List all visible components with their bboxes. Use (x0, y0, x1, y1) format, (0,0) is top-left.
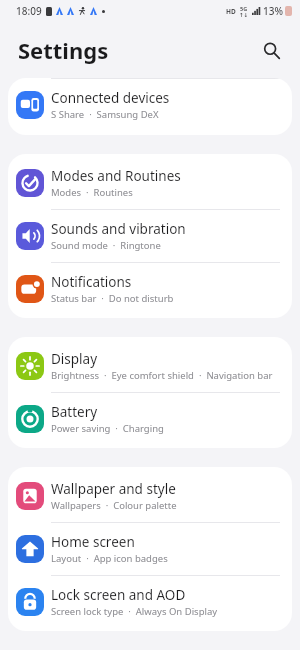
staticText: Sounds and vibration (51, 220, 186, 238)
staticText: Power saving · Charging (51, 422, 164, 435)
staticText: Wallpapers · Colour palette (51, 499, 177, 512)
staticText: 13% (263, 4, 283, 18)
button[interactable]: Battery (8, 393, 292, 445)
staticText: Layout · App icon badges (51, 552, 168, 565)
button[interactable]: Search (254, 33, 288, 67)
staticText: Modes and Routines (51, 167, 181, 185)
staticText: Status bar · Do not disturb (51, 292, 174, 305)
button[interactable]: Sounds and vibration (8, 210, 292, 263)
button[interactable]: Wallpaper and style (8, 470, 292, 523)
staticText: Modes · Routines (51, 186, 133, 199)
button[interactable]: Display (8, 340, 292, 393)
button[interactable]: Connected devices (8, 79, 292, 131)
button[interactable]: Modes and Routines (8, 157, 292, 210)
button[interactable]: Notifications (8, 263, 292, 315)
staticText: 18:09 (16, 4, 42, 18)
staticText: Settings (18, 35, 109, 65)
staticText: Brightness · Eye comfort shield · Naviga… (51, 369, 273, 382)
staticText: Home screen (51, 533, 135, 551)
staticText: Sound mode · Ringtone (51, 239, 161, 252)
staticText: Display (51, 350, 98, 368)
staticText: Wallpaper and style (51, 480, 176, 498)
staticText: Battery (51, 403, 98, 421)
button[interactable]: Lock screen and AOD (8, 576, 292, 628)
staticText: 5G (240, 5, 248, 12)
staticText: S Share · Samsung DeX (51, 108, 159, 121)
staticText: Notifications (51, 273, 132, 291)
staticText: Lock screen and AOD (51, 586, 186, 604)
staticText: Connected devices (51, 89, 170, 107)
staticText: ↑↓ (239, 12, 249, 18)
button[interactable]: Home screen (8, 523, 292, 576)
staticText: HD (226, 7, 236, 16)
staticText: Screen lock type · Always On Display (51, 605, 218, 618)
